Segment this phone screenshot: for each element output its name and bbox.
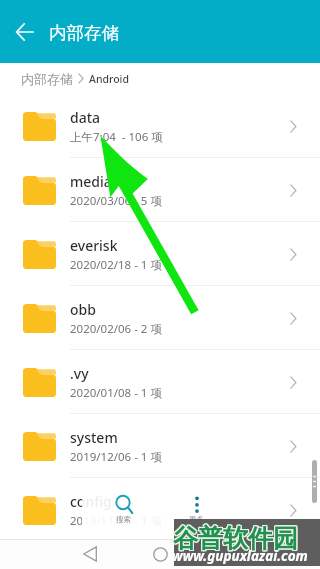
button[interactable]: data [0,94,320,158]
staticText: 谷普软件园 [173,522,298,553]
staticText: 谷普软件园 [172,524,297,555]
button[interactable]: media [0,158,320,222]
staticText: obb [70,300,96,319]
staticText: 2020/02/18 - 1 项 [70,257,162,273]
staticText: media [70,172,112,191]
staticText: 搜索 [116,515,131,524]
staticText: 更多 [189,515,204,524]
staticText: 谷普软件园 [173,523,298,554]
staticText: 谷普软件园 [174,522,299,553]
staticText: 谷普软件园 [173,524,298,555]
button[interactable]: Back [11,18,39,46]
staticText: 2020/02/06 - 2 项 [70,321,162,337]
button[interactable]: 内部存储 [21,71,73,87]
staticText: .vy [70,364,89,383]
button[interactable]: obb [0,286,320,350]
staticText: 谷普软件园 [174,523,299,554]
button[interactable]: 搜索 [103,493,143,527]
staticText: 2020/01/08 - 1 项 [70,385,162,401]
staticText: everisk [70,236,118,255]
button[interactable]: Back [74,539,106,569]
button[interactable]: .vy [0,350,320,414]
button[interactable]: Home [144,539,176,569]
button[interactable]: More options [182,493,210,527]
staticText: 2019/12/06 - 1 项 [70,449,162,465]
staticText: 上午7:04 - 106 项 [70,129,163,145]
staticText: 2019/11/25 - 1 项 [70,513,162,529]
staticText: 谷普软件园 [172,522,297,553]
staticText: 谷普软件园 [174,524,299,555]
staticText: 2020/03/06 - 5 项 [70,193,162,209]
staticText: system [70,428,118,447]
staticText: www.gupuxlazai.com [172,547,308,565]
button[interactable]: system [0,414,320,478]
button[interactable]: config [0,478,320,542]
staticText: 内部存储 [49,22,119,44]
button[interactable]: everisk [0,222,320,286]
button[interactable]: Android [89,72,129,86]
staticText: data [70,108,101,127]
staticText: 谷普软件园 [172,523,297,554]
staticText: config [70,492,112,511]
